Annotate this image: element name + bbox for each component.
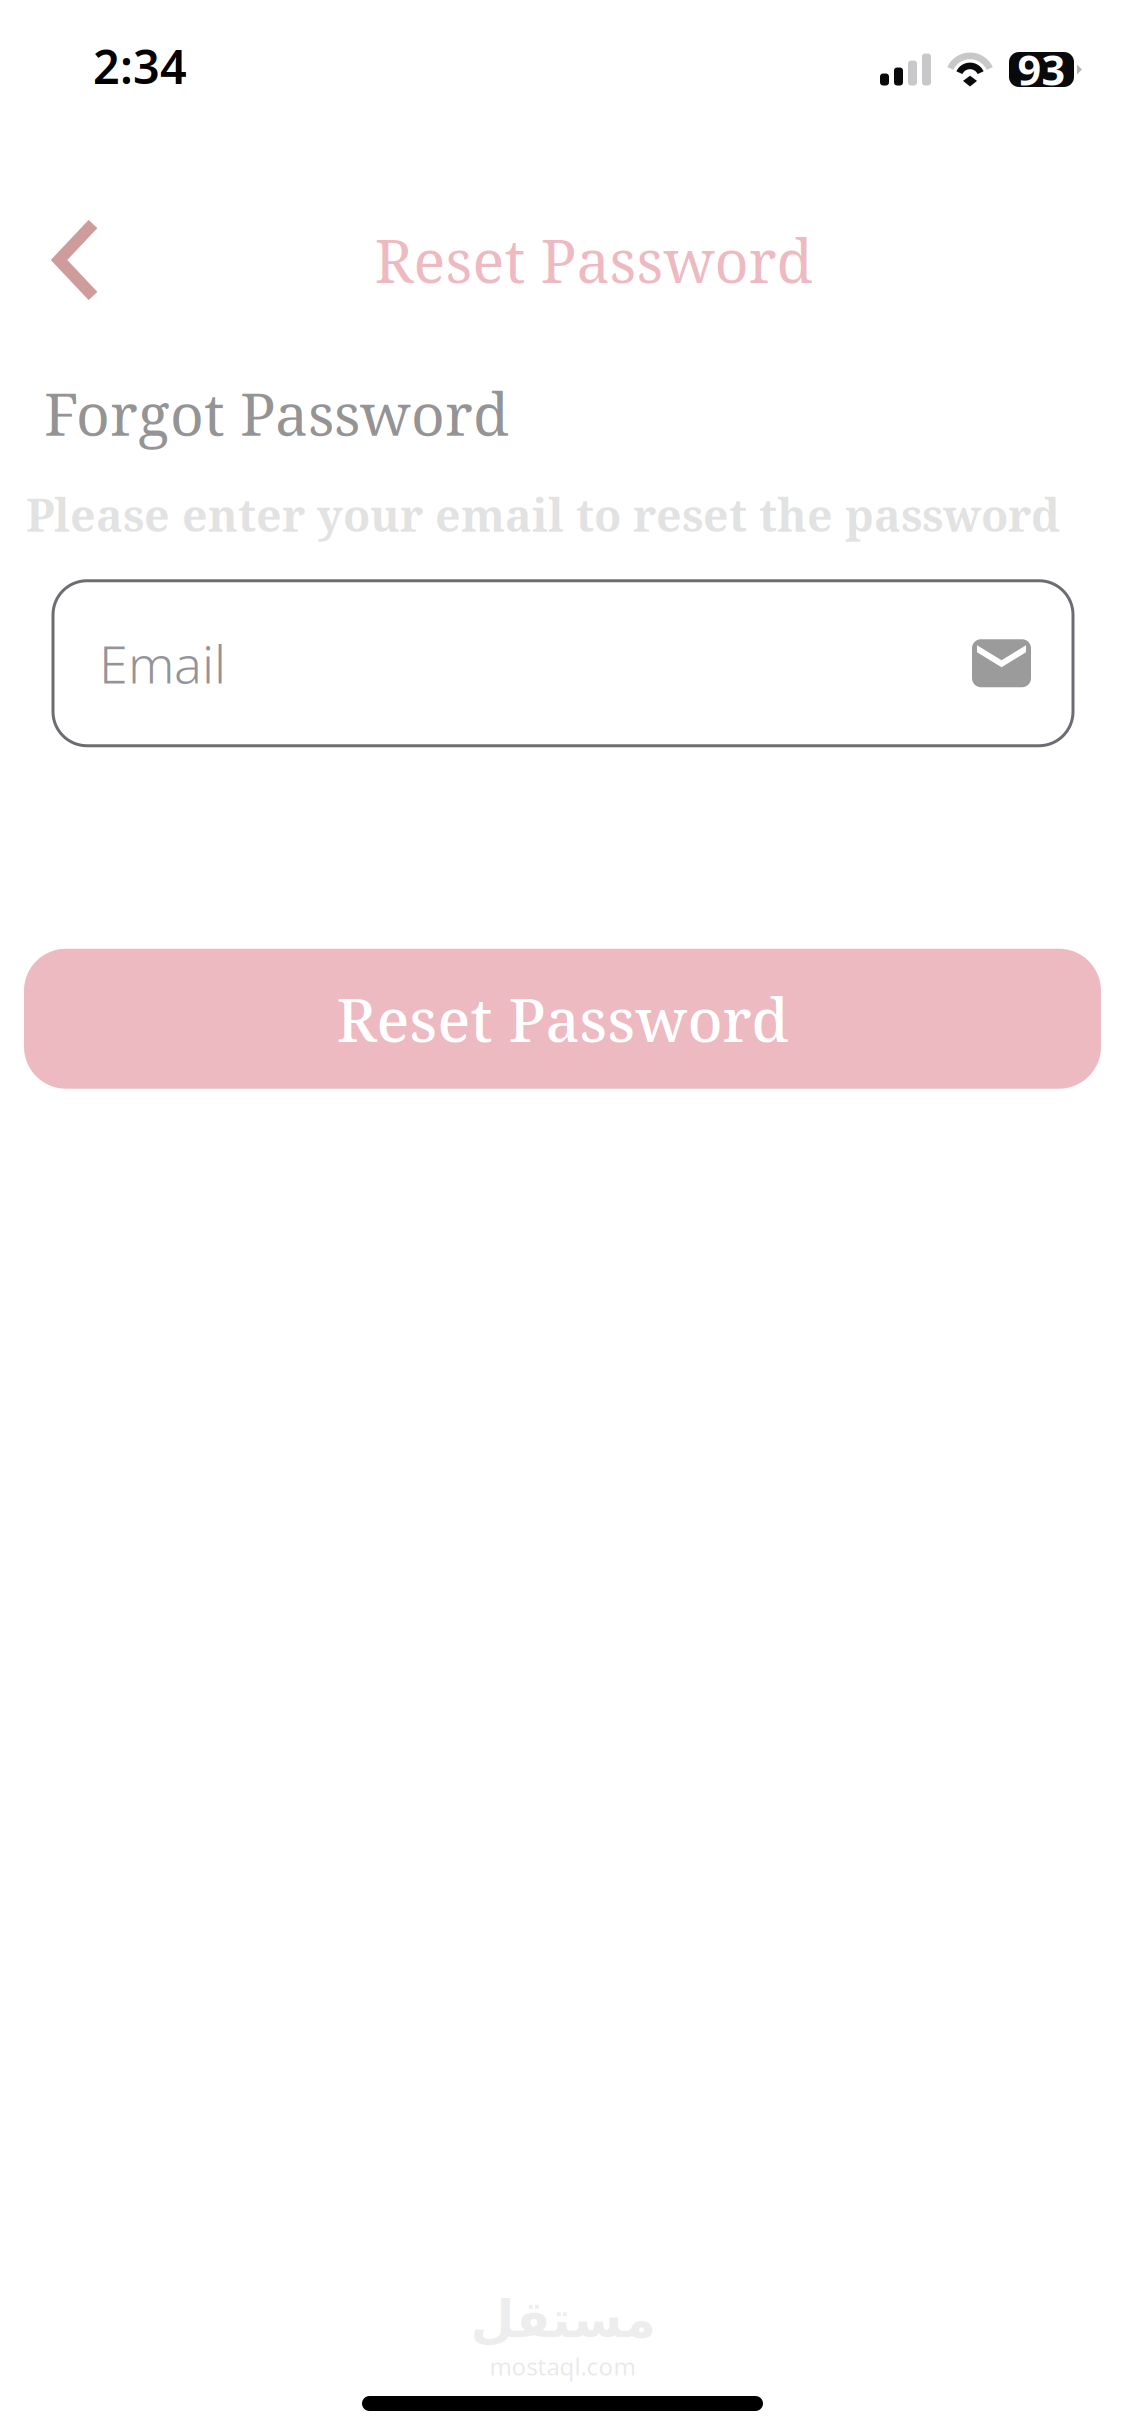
staticText: Email bbox=[99, 629, 226, 698]
staticText: Reset Password bbox=[374, 220, 812, 300]
staticText: Please enter your email to reset the pas… bbox=[26, 484, 1060, 545]
staticText: 93 bbox=[1017, 42, 1065, 97]
staticText: 2:34 bbox=[93, 35, 187, 97]
staticText: Forgot Password bbox=[44, 373, 509, 453]
staticText: mostaql.com bbox=[489, 2350, 635, 2382]
button[interactable]: Back bbox=[21, 205, 131, 315]
button[interactable]: Reset Password bbox=[24, 949, 1101, 1089]
staticText: مستقل bbox=[470, 2291, 655, 2348]
staticText: Reset Password bbox=[336, 978, 788, 1060]
